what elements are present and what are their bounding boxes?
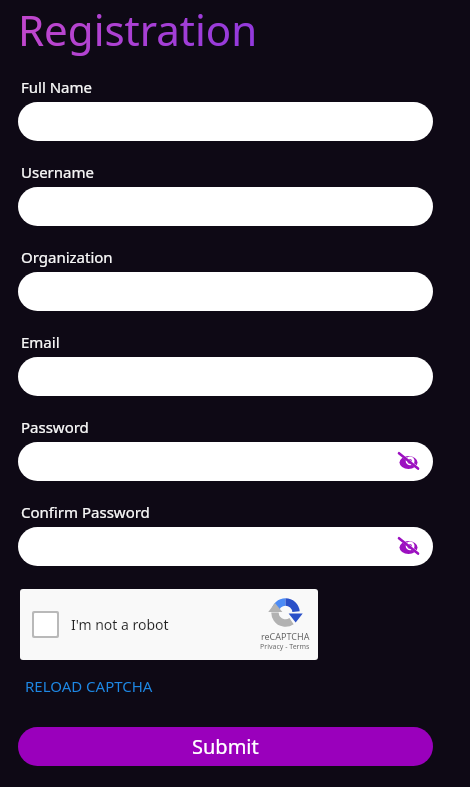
staticText: Organization xyxy=(21,247,113,267)
staticText: Full Name xyxy=(21,77,92,97)
staticText: Submit xyxy=(192,733,259,760)
staticText: Email xyxy=(21,332,60,352)
button[interactable]: RELOAD CAPTCHA xyxy=(25,676,153,696)
button[interactable] xyxy=(18,102,433,141)
staticText: Confirm Password xyxy=(21,502,150,522)
staticText: Registration xyxy=(18,1,258,58)
button[interactable] xyxy=(18,357,433,396)
staticText: Password xyxy=(21,417,89,437)
button[interactable] xyxy=(18,187,433,226)
staticText: reCAPTCHA xyxy=(261,630,310,642)
staticText: Username xyxy=(21,162,94,182)
staticText: I'm not a robot xyxy=(71,615,169,634)
button[interactable] xyxy=(18,442,433,481)
button[interactable] xyxy=(18,527,433,566)
button[interactable] xyxy=(398,536,419,557)
button[interactable] xyxy=(398,451,419,472)
button[interactable]: Submit xyxy=(18,727,433,766)
staticText: Privacy - Terms xyxy=(260,642,310,652)
button[interactable] xyxy=(18,272,433,311)
